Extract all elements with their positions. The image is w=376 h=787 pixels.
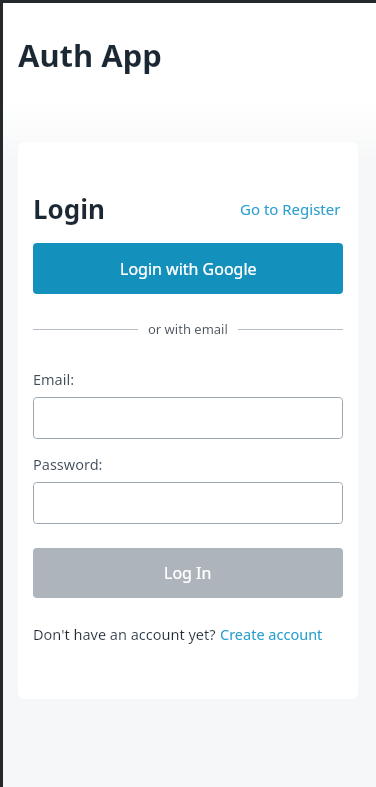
staticText: Auth App	[18, 34, 162, 76]
staticText: or with email	[148, 320, 228, 338]
staticText: Create account	[220, 624, 323, 644]
button[interactable]: Login with Google	[33, 243, 343, 294]
staticText: Password:	[33, 454, 103, 474]
staticText: Email:	[33, 369, 75, 389]
staticText: Log In	[164, 562, 212, 584]
button[interactable]: Log In	[33, 548, 343, 598]
button[interactable]: Go to Register	[238, 197, 343, 221]
staticText: Login	[33, 191, 105, 226]
staticText: Login with Google	[120, 258, 257, 280]
button[interactable]: Email input field	[33, 397, 343, 439]
button[interactable]: Create account	[220, 624, 323, 644]
button[interactable]: Password input field	[33, 482, 343, 524]
staticText: Go to Register	[240, 199, 341, 219]
staticText: Don't have an account yet?	[33, 624, 220, 644]
